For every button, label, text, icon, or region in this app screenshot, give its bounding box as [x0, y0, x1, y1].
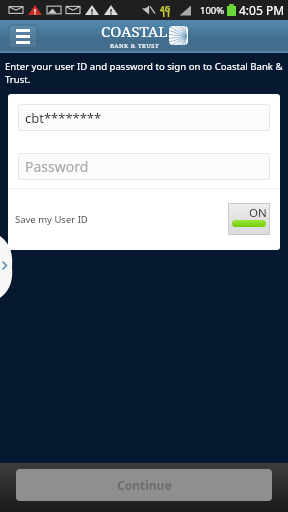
staticText: Enter your user ID and password to sign …	[5, 60, 286, 86]
staticText: Continue	[117, 477, 172, 493]
staticText: Password	[25, 157, 89, 176]
staticText: ON	[249, 205, 267, 221]
staticText: BANK & TRUST	[110, 42, 160, 50]
staticText: 4:05 PM	[239, 2, 285, 18]
button[interactable]: Continue	[16, 469, 272, 501]
staticText: 4G	[160, 3, 171, 14]
staticText: 100%	[200, 4, 225, 17]
staticText: cbt********	[25, 109, 102, 127]
button[interactable]: Menu	[8, 24, 38, 49]
button[interactable]: cbt********	[18, 104, 270, 131]
button[interactable]: Password	[18, 153, 270, 180]
button[interactable]: Open navigation panel	[0, 236, 12, 298]
staticText: Save my User ID	[15, 213, 88, 226]
staticText: COASTAL	[101, 21, 168, 41]
button[interactable]: Save my User ID, on	[228, 203, 270, 235]
